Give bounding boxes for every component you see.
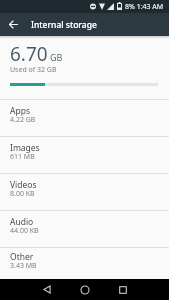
button[interactable] [0, 13, 26, 36]
button[interactable] [66, 279, 104, 300]
staticText: 3.43 MB [10, 261, 37, 271]
button[interactable] [104, 279, 142, 300]
staticText: Images [10, 142, 40, 154]
button[interactable]: Apps [0, 99, 169, 136]
staticText: Used of 32 GB [10, 65, 57, 75]
button[interactable]: Images [0, 136, 169, 173]
staticText: Audio [10, 216, 34, 228]
staticText: Videos [10, 179, 37, 191]
button[interactable]: Videos [0, 173, 169, 210]
staticText: 8% 1:43 AM [125, 2, 164, 12]
staticText: 6.70 GB [10, 41, 63, 67]
button[interactable]: Audio [0, 210, 169, 247]
staticText: Internal storage [31, 19, 97, 31]
button[interactable]: Other [0, 247, 169, 279]
staticText: 8.00 KB [10, 189, 35, 199]
staticText: Other [10, 251, 34, 263]
button[interactable] [28, 279, 66, 300]
staticText: 611 MB [10, 152, 35, 162]
staticText: 4.22 GB [10, 115, 36, 125]
staticText: Apps [10, 105, 30, 117]
staticText: 44.00 KB [10, 226, 39, 236]
